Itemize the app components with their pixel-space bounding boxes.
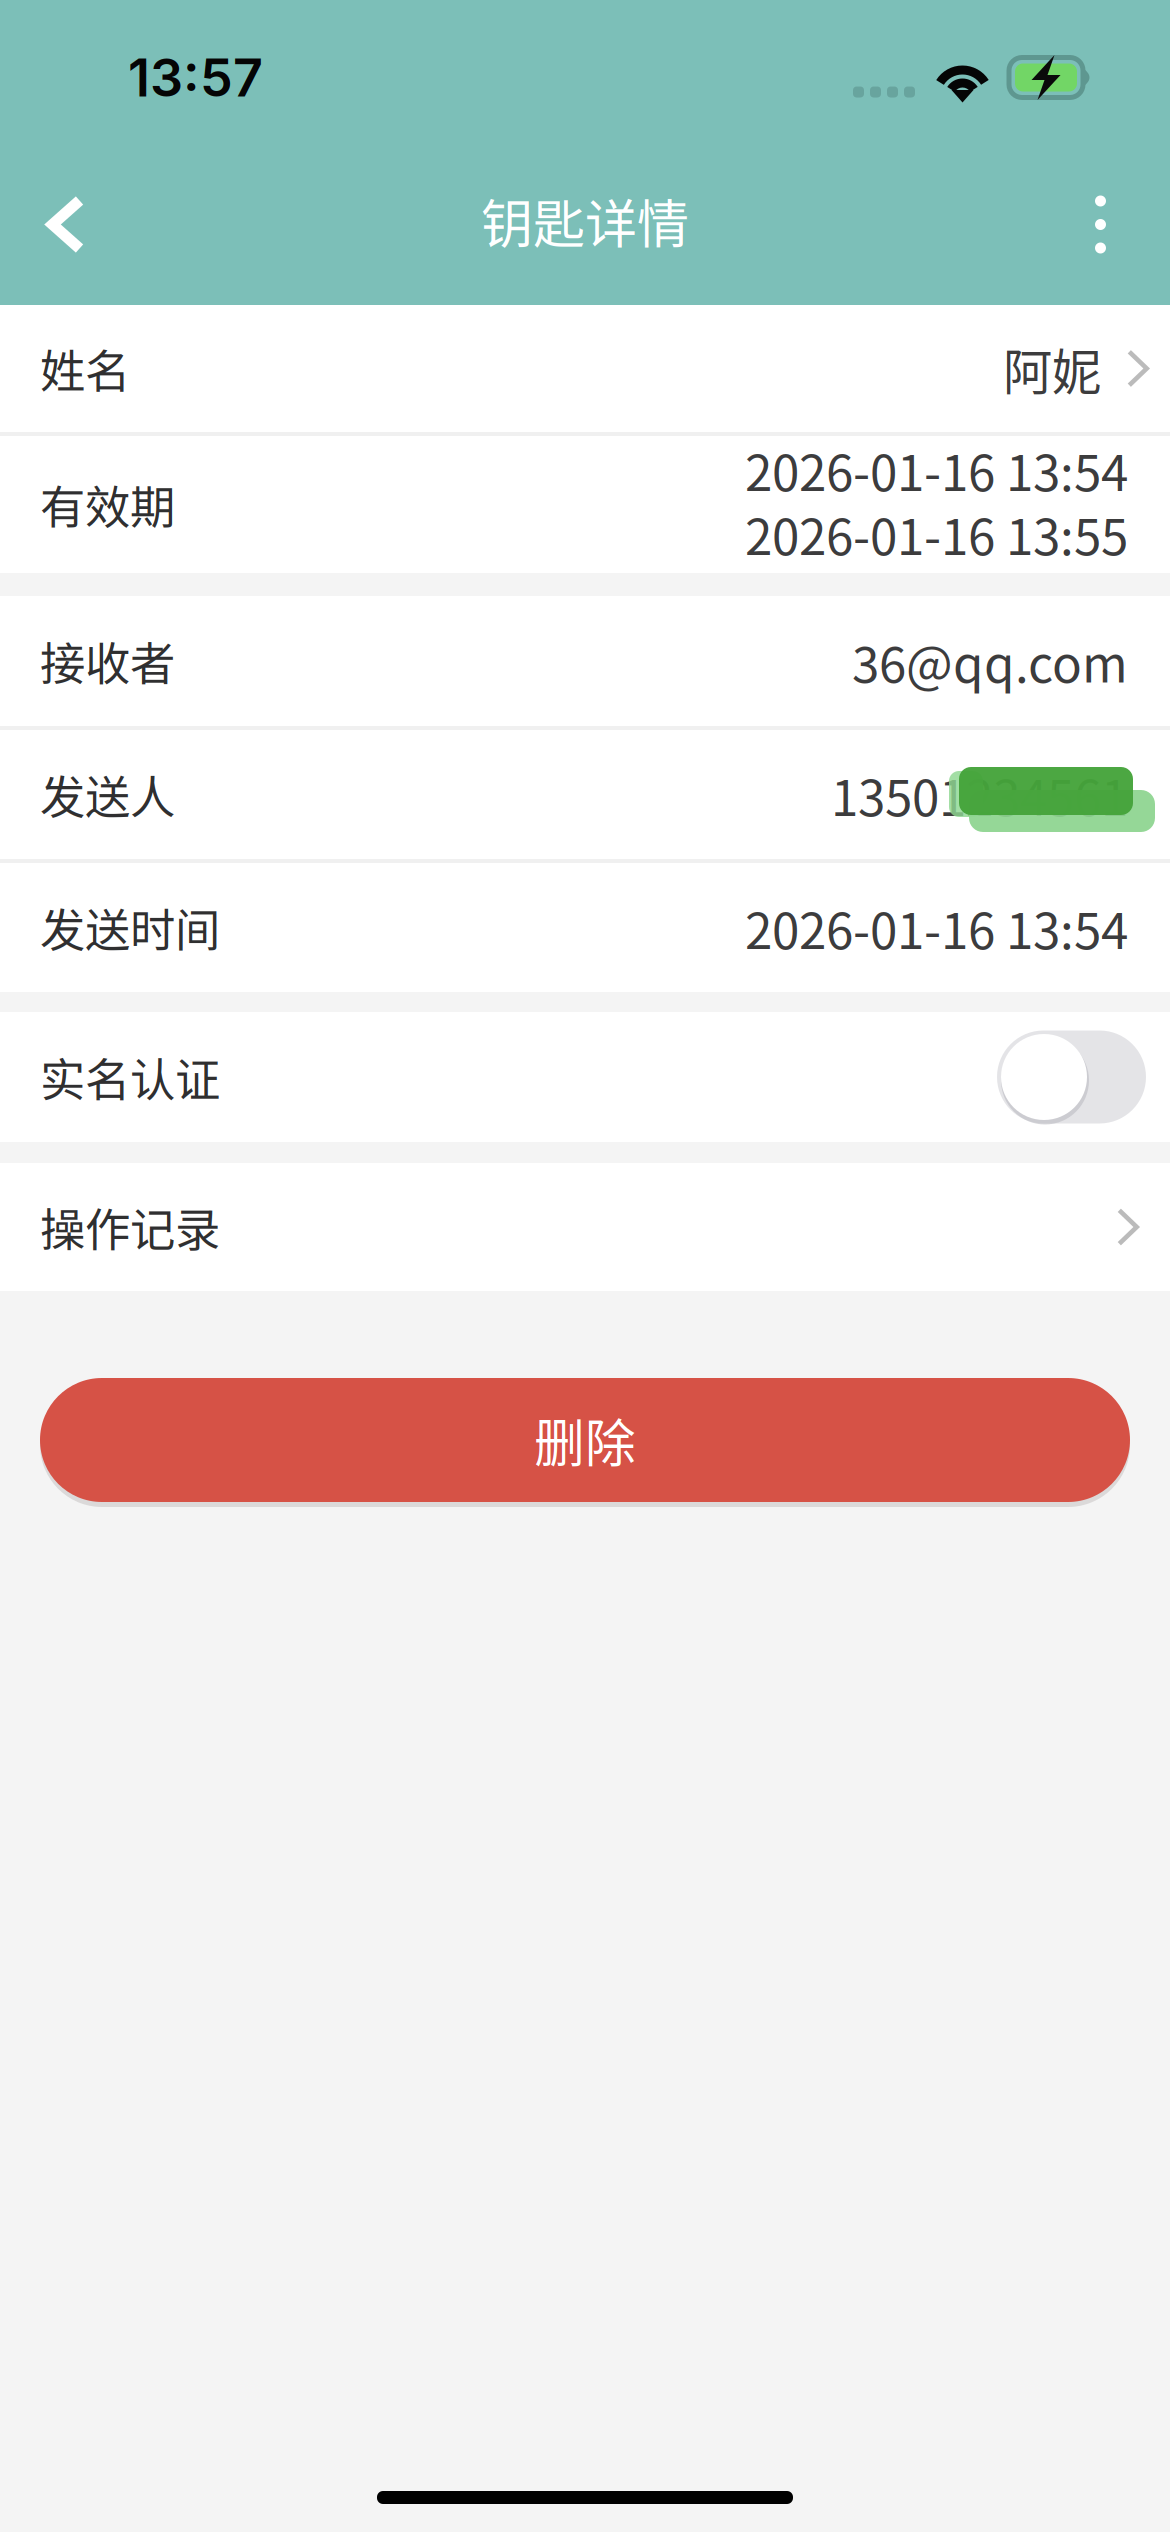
button[interactable]: 返回	[0, 169, 131, 279]
staticText: 发送时间	[40, 895, 220, 960]
staticText: 2026-01-16 13:54	[745, 892, 1128, 963]
staticText: 阿妮	[1003, 333, 1101, 404]
staticText: 2026-01-16 13:55	[745, 498, 1128, 569]
staticText: 姓名	[40, 336, 130, 401]
staticText: 删除	[534, 1403, 636, 1477]
button[interactable]: 姓名	[0, 305, 1170, 432]
button[interactable]: 实名认证	[997, 1030, 1146, 1123]
staticText: 13501234561	[831, 759, 1128, 830]
staticText: 有效期	[40, 472, 175, 537]
button[interactable]: 操作记录	[0, 1163, 1170, 1291]
staticText: 13:57	[128, 46, 263, 109]
staticText: 36@qq.com	[852, 625, 1128, 697]
staticText: 钥匙详情	[481, 183, 689, 258]
staticText: 实名认证	[40, 1044, 220, 1110]
button[interactable]: 更多	[1031, 169, 1170, 279]
staticText: 2026-01-16 13:54	[745, 434, 1128, 505]
staticText: 操作记录	[40, 1194, 220, 1260]
staticText: 接收者	[40, 628, 175, 694]
staticText: 发送人	[40, 762, 175, 827]
button[interactable]: 删除	[40, 1373, 1130, 1507]
